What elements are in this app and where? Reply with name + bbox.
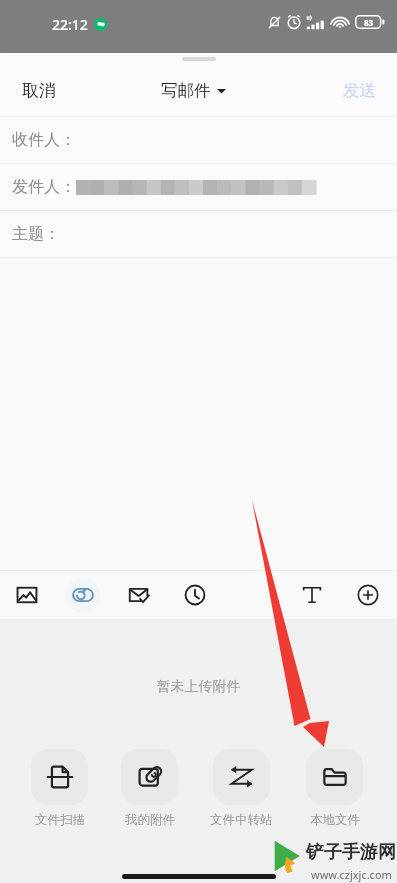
staticText: 暂未上传附件 — [0, 678, 397, 696]
staticText: 我的附件 — [125, 812, 175, 828]
button[interactable]: 文件中转站 — [210, 749, 273, 828]
staticText: 写邮件 — [161, 80, 211, 101]
staticText: www.czjxjc.com — [311, 867, 392, 882]
staticText: 22:12 — [52, 15, 88, 34]
button[interactable]: 写邮件 — [155, 74, 232, 107]
button[interactable]: More — [351, 578, 385, 612]
button[interactable]: 主题： — [0, 211, 397, 257]
button[interactable]: Mail template — [122, 578, 156, 612]
staticText: 发件人： — [12, 177, 76, 197]
button[interactable]: Insert image — [10, 578, 44, 612]
staticText: 铲子手游网 — [306, 841, 396, 864]
button[interactable]: 取消 — [0, 72, 74, 109]
button[interactable]: Text format — [295, 578, 329, 612]
button[interactable]: Insert link — [66, 578, 100, 612]
staticText: 文件扫描 — [35, 812, 85, 828]
staticText: 文件中转站 — [210, 812, 273, 828]
button[interactable]: 发件人： — [0, 164, 397, 210]
staticText: 收件人： — [12, 130, 76, 150]
staticText: 83 — [364, 17, 374, 28]
staticText: 取消 — [22, 80, 56, 101]
button[interactable]: 我的附件 — [121, 749, 178, 828]
button[interactable]: 收件人： — [0, 117, 397, 163]
staticText: 本地文件 — [310, 812, 360, 828]
button[interactable]: 发送 — [325, 72, 397, 109]
staticText: 主题： — [12, 224, 60, 244]
button[interactable]: 本地文件 — [306, 749, 363, 828]
staticText: 发送 — [343, 80, 376, 101]
button[interactable]: 文件扫描 — [31, 749, 88, 828]
button[interactable]: Schedule send — [178, 578, 212, 612]
